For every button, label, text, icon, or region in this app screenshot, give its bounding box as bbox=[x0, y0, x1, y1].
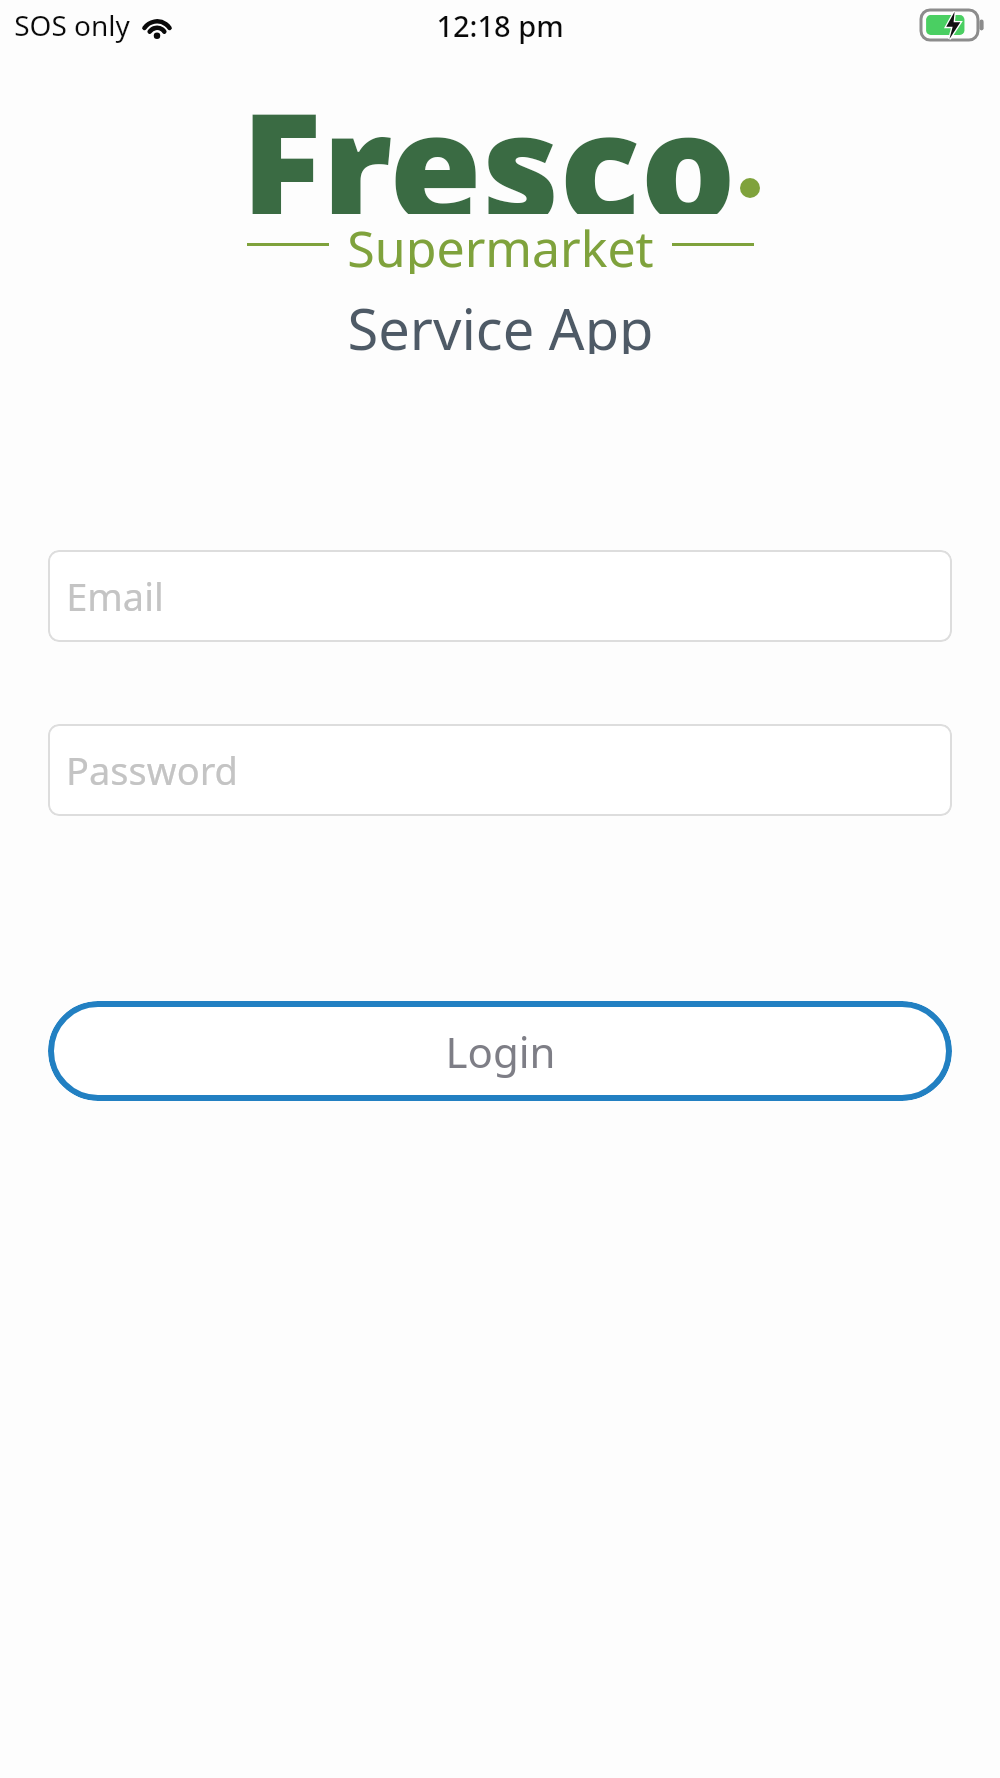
staticText: Email bbox=[66, 570, 164, 622]
button[interactable]: Login bbox=[48, 1001, 952, 1101]
other: Battery charging bbox=[921, 10, 985, 40]
other: Wi-Fi signal bbox=[141, 13, 173, 38]
staticText: SOS only bbox=[14, 6, 130, 44]
staticText: Password bbox=[66, 744, 238, 796]
staticText: Fresco bbox=[241, 62, 736, 214]
staticText: Service App bbox=[347, 290, 654, 354]
staticText: 12:18 pm bbox=[436, 6, 564, 45]
button[interactable]: Password bbox=[48, 724, 952, 816]
staticText: Login bbox=[445, 1023, 556, 1080]
button[interactable]: Email bbox=[48, 550, 952, 642]
staticText: Supermarket bbox=[347, 214, 654, 274]
